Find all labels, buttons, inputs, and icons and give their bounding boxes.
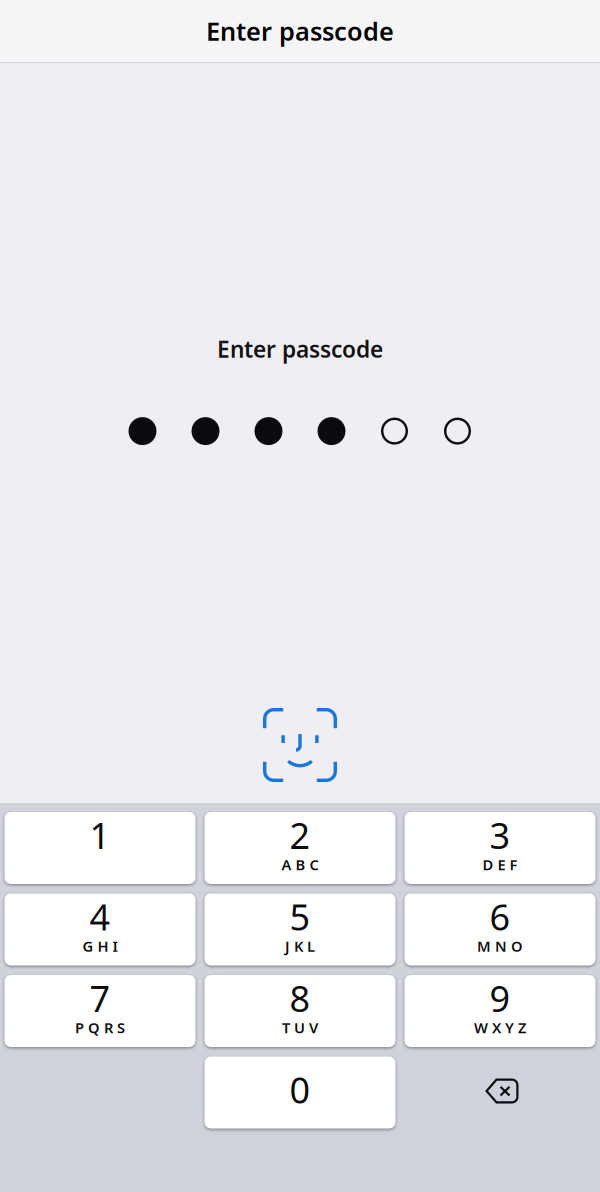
button[interactable]: 2 [204, 812, 395, 884]
button[interactable]: 8 [204, 975, 395, 1047]
button[interactable]: 4 [4, 893, 195, 965]
staticText: 0 [289, 1066, 310, 1113]
button[interactable]: 0 [204, 1056, 395, 1128]
staticText: W X Y Z [474, 1018, 526, 1037]
staticText: J K L [285, 936, 315, 956]
staticText: 7 [89, 974, 110, 1022]
staticText: M N O [477, 936, 523, 956]
staticText: T U V [282, 1018, 318, 1037]
staticText: Enter passcode [206, 14, 394, 48]
staticText: 5 [289, 893, 310, 940]
button[interactable]: 9 [404, 975, 595, 1047]
staticText: Enter passcode [217, 334, 383, 364]
button[interactable]: 6 [404, 893, 595, 965]
button[interactable]: Face ID [263, 708, 337, 782]
button[interactable]: Delete [404, 1056, 595, 1128]
staticText: A B C [281, 855, 318, 874]
staticText: P Q R S [75, 1018, 125, 1037]
button[interactable]: 7 [4, 975, 195, 1047]
button[interactable]: 3 [404, 812, 595, 884]
staticText: 1 [89, 811, 110, 859]
staticText: 4 [89, 893, 110, 940]
staticText: D E F [482, 855, 517, 874]
staticText: 8 [289, 974, 310, 1022]
staticText: 2 [289, 811, 310, 859]
staticText: 9 [489, 974, 510, 1022]
staticText: 3 [489, 811, 510, 859]
button[interactable]: 1 [4, 812, 195, 884]
staticText: G H I [82, 936, 117, 956]
button[interactable]: 5 [204, 893, 395, 965]
staticText: 6 [489, 893, 510, 940]
